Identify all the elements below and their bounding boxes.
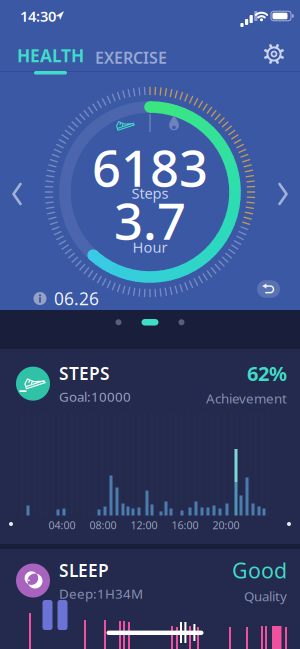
staticText: 16:00 xyxy=(171,518,198,532)
button[interactable]: Reset xyxy=(257,280,281,299)
staticText: 12:00 xyxy=(130,518,157,532)
staticText: Quality xyxy=(244,587,287,605)
staticText: 08:00 xyxy=(89,518,116,532)
staticText: Good xyxy=(232,556,287,584)
button[interactable]: Next xyxy=(276,181,290,207)
button[interactable]: Settings xyxy=(263,43,285,65)
button[interactable]: HEALTH xyxy=(17,44,84,74)
staticText: Deep:1H34M xyxy=(59,585,143,602)
button[interactable]: 06.26 xyxy=(33,287,99,310)
button[interactable]: Page 2 of 3 xyxy=(115,319,184,325)
staticText: SLEEP xyxy=(59,559,109,582)
button[interactable]: STEPS xyxy=(0,360,300,407)
staticText: 20:00 xyxy=(212,518,239,532)
staticText: Achievement xyxy=(206,390,287,407)
staticText: 6183 xyxy=(92,133,208,201)
staticText: Hour xyxy=(132,237,167,257)
staticText: Goal:10000 xyxy=(59,388,131,405)
staticText: 14:30 xyxy=(20,6,56,26)
button[interactable]: EXERCISE xyxy=(95,47,167,68)
staticText: 62% xyxy=(247,360,287,387)
staticText: Steps xyxy=(131,183,168,203)
button[interactable]: Previous xyxy=(10,181,24,207)
staticText: 06.26 xyxy=(54,287,99,310)
staticText: 04:00 xyxy=(48,518,75,532)
staticText: 3.7 xyxy=(114,186,186,254)
staticText: HEALTH xyxy=(17,44,84,67)
staticText: EXERCISE xyxy=(95,47,167,68)
button[interactable]: SLEEP xyxy=(0,556,300,605)
staticText: STEPS xyxy=(59,362,110,385)
